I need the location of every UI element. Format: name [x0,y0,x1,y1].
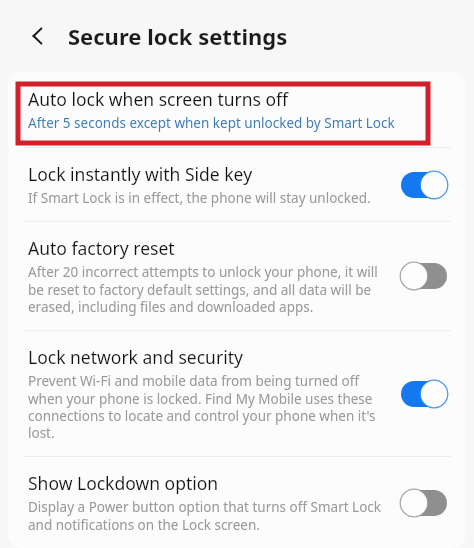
staticText: Show Lockdown option [28,471,219,495]
button[interactable]: Show Lockdown option [8,457,466,548]
staticText: Lock network and security [28,345,243,369]
button[interactable]: Auto lock when screen turns off [8,72,466,147]
staticText: Auto lock when screen turns off [28,87,289,111]
staticText: Lock instantly with Side key [28,162,253,186]
staticText: Display a Power button option that turns… [28,498,388,534]
button[interactable]: Lock instantly with Side key [8,148,466,221]
button[interactable]: Back [20,18,56,54]
staticText: Prevent Wi-Fi and mobile data from being… [28,372,388,442]
button[interactable]: Auto factory reset [8,222,466,330]
button[interactable]: Toggle on [398,378,450,410]
button[interactable]: Toggle off [398,487,450,519]
staticText: Auto factory reset [28,236,175,260]
button[interactable]: Lock network and security [8,331,466,456]
staticText: After 5 seconds except when kept unlocke… [28,114,395,132]
button[interactable]: Toggle on [398,169,450,201]
staticText: Secure lock settings [68,21,288,51]
button[interactable]: Toggle off [398,260,450,292]
staticText: If Smart Lock is in effect, the phone wi… [28,189,371,207]
staticText: After 20 incorrect attempts to unlock yo… [28,263,388,316]
